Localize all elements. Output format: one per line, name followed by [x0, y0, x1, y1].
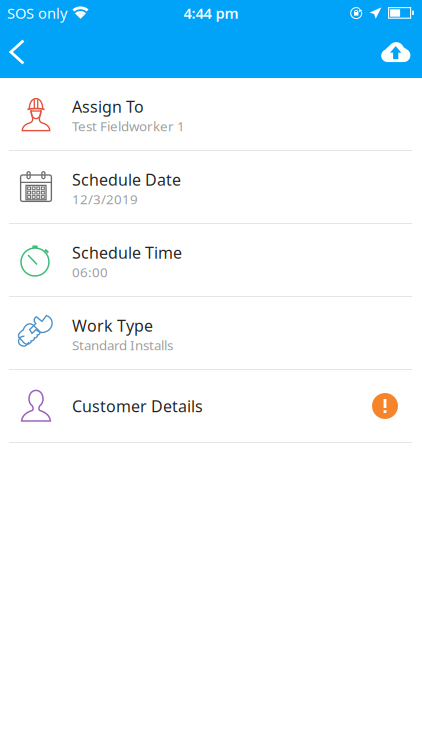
button[interactable]: Customer Details [0, 370, 422, 442]
staticText: Work Type [72, 315, 153, 336]
button[interactable]: Work Type [0, 297, 422, 369]
button[interactable]: Schedule Time [0, 224, 422, 296]
staticText: SOS only [7, 3, 67, 23]
staticText: Schedule Date [72, 169, 181, 190]
button[interactable]: Assign To [0, 78, 422, 150]
button[interactable]: Upload [365, 29, 422, 74]
staticText: 4:44 pm [183, 3, 238, 23]
button[interactable]: Schedule Date [0, 151, 422, 223]
staticText: Assign To [72, 96, 144, 117]
staticText: Test Fieldworker 1 [72, 117, 185, 135]
staticText: Standard Installs [72, 336, 173, 354]
staticText: 06:00 [72, 263, 108, 281]
staticText: Schedule Time [72, 242, 182, 263]
staticText: Customer Details [72, 395, 203, 417]
button[interactable]: Back [0, 28, 42, 76]
staticText: 12/3/2019 [72, 190, 138, 208]
